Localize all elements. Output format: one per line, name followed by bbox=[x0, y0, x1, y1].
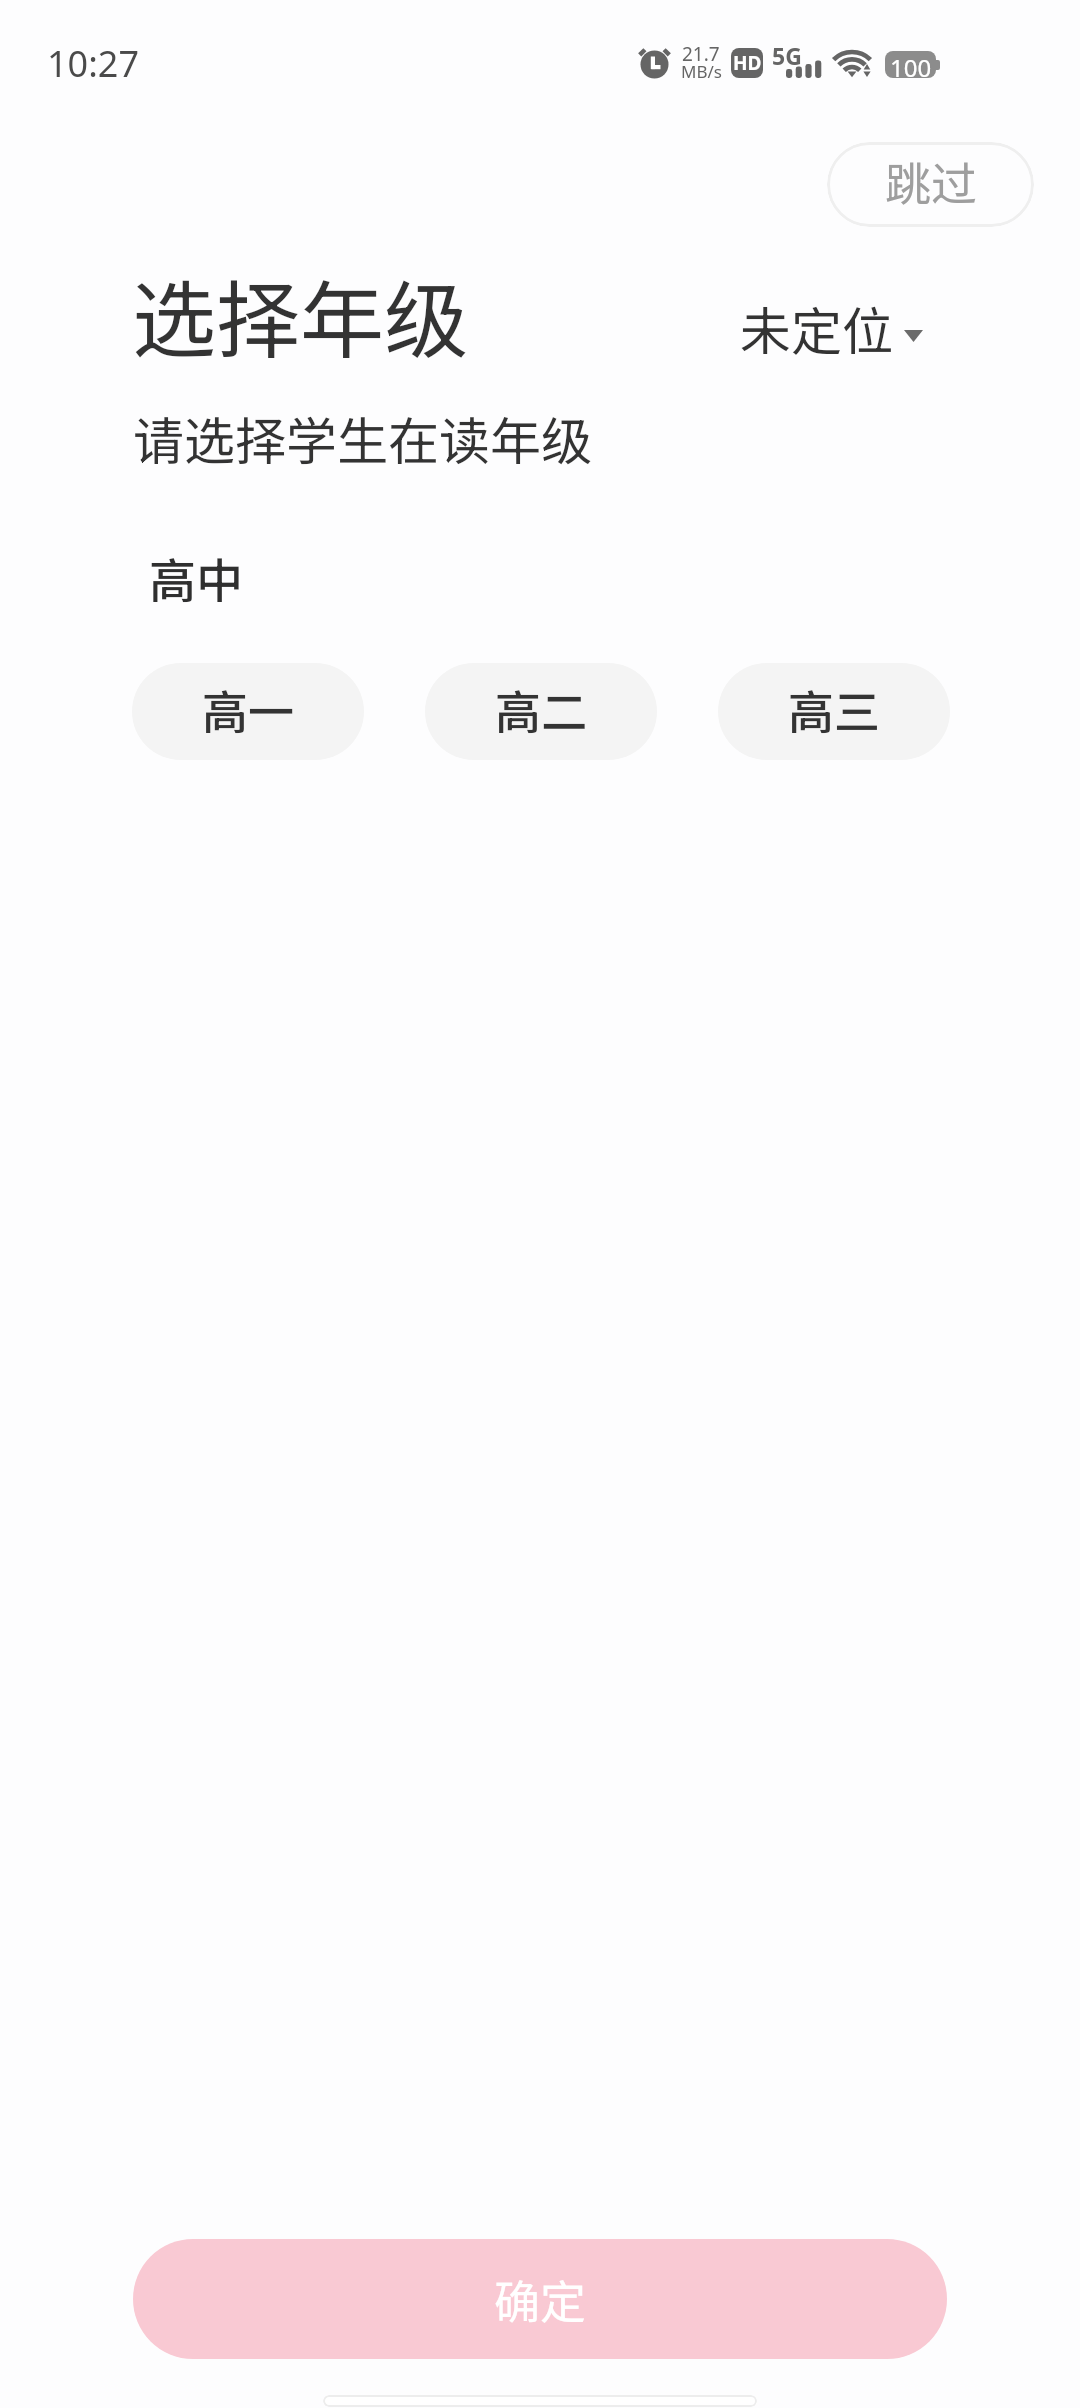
staticText: 高一 bbox=[202, 676, 294, 743]
staticText: HD bbox=[733, 50, 762, 76]
button[interactable]: 确定 bbox=[133, 2239, 947, 2359]
staticText: 10:27 bbox=[47, 39, 140, 88]
button[interactable]: 高二 bbox=[425, 663, 657, 760]
staticText: 高中 bbox=[149, 543, 243, 611]
other: Alarm bbox=[634, 44, 674, 82]
other: Change location bbox=[904, 330, 923, 342]
staticText: MB/s bbox=[681, 60, 722, 83]
staticText: 5G bbox=[772, 40, 802, 71]
staticText: 100 bbox=[890, 51, 932, 78]
other: Mobile signal bbox=[786, 58, 822, 78]
button[interactable]: 跳过 bbox=[827, 142, 1034, 227]
button[interactable]: 高三 bbox=[718, 663, 950, 760]
staticText: 选择年级 bbox=[132, 254, 469, 376]
button[interactable]: 未定位 bbox=[740, 291, 923, 365]
button[interactable]: 高一 bbox=[132, 663, 364, 760]
staticText: 请选择学生在读年级 bbox=[133, 401, 593, 475]
staticText: 高三 bbox=[788, 676, 880, 743]
other: Wi-Fi bbox=[830, 46, 874, 80]
staticText: 未定位 bbox=[740, 291, 894, 365]
staticText: 跳过 bbox=[885, 148, 977, 215]
staticText: 21.7 bbox=[682, 41, 720, 67]
staticText: 高二 bbox=[495, 676, 587, 743]
staticText: 确定 bbox=[494, 2266, 586, 2333]
